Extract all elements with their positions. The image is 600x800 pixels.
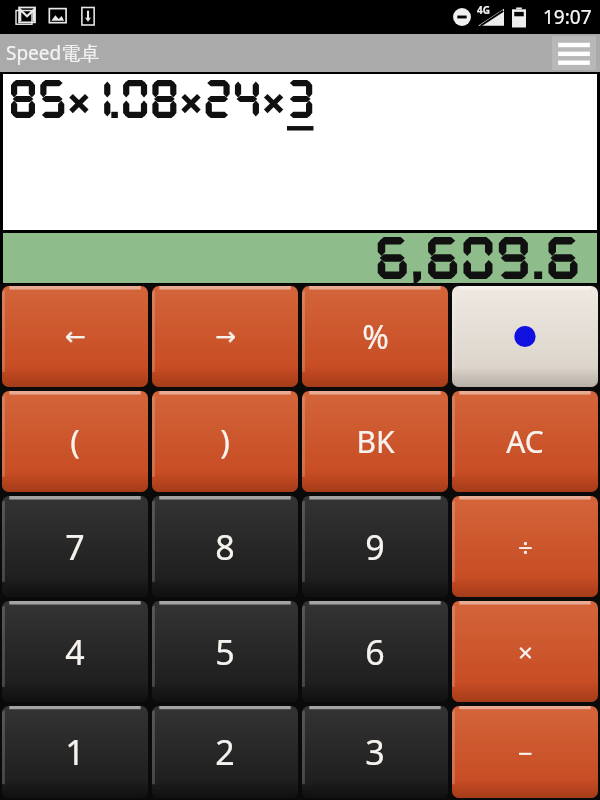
staticText: − <box>518 735 533 770</box>
staticText: ÷ <box>518 529 533 564</box>
staticText: 3 <box>365 729 385 775</box>
staticText: ) <box>220 420 230 464</box>
button[interactable]: Menu <box>552 36 596 70</box>
button[interactable]: 9 <box>302 496 448 597</box>
button[interactable]: Left <box>2 286 148 387</box>
staticText: 1 <box>65 729 85 775</box>
button[interactable]: Right <box>152 286 298 387</box>
staticText: → <box>215 322 236 351</box>
button[interactable]: 4 <box>2 601 148 702</box>
button[interactable]: BK <box>302 391 448 492</box>
button[interactable] <box>3 74 597 230</box>
button[interactable]: Multiply <box>452 601 598 702</box>
button[interactable]: Minus <box>452 706 598 798</box>
button[interactable]: % <box>302 286 448 387</box>
button[interactable]: ) <box>152 391 298 492</box>
staticText: 8 <box>215 524 235 570</box>
button[interactable]: 1 <box>2 706 148 798</box>
staticText: ( <box>70 420 80 464</box>
staticText: 4G <box>477 3 490 17</box>
staticText: 4 <box>65 629 85 675</box>
button[interactable]: Decimal point <box>452 286 598 387</box>
staticText: 19:07 <box>543 4 592 30</box>
button[interactable]: 6 <box>302 601 448 702</box>
staticText: AC <box>506 421 544 462</box>
staticText: 7 <box>65 524 85 570</box>
staticText: 5 <box>215 629 235 675</box>
staticText: BK <box>356 421 395 462</box>
button[interactable]: AC <box>452 391 598 492</box>
staticText: ← <box>65 322 86 351</box>
button[interactable]: 7 <box>2 496 148 597</box>
button[interactable] <box>3 233 597 283</box>
button[interactable]: 2 <box>152 706 298 798</box>
staticText: × <box>518 634 533 669</box>
button[interactable]: 8 <box>152 496 298 597</box>
staticText: 2 <box>215 729 235 775</box>
button[interactable]: 3 <box>302 706 448 798</box>
button[interactable]: Divide <box>452 496 598 597</box>
staticText: 6 <box>365 629 385 675</box>
button[interactable]: 5 <box>152 601 298 702</box>
staticText: 9 <box>365 524 385 570</box>
staticText: % <box>362 315 389 359</box>
staticText: Speed電卓 <box>6 40 100 66</box>
button[interactable]: ( <box>2 391 148 492</box>
